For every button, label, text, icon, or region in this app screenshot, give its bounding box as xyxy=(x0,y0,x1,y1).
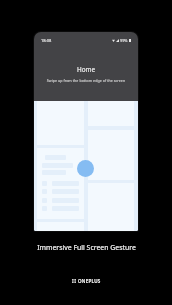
staticText: 18:08 xyxy=(41,38,52,43)
staticText: 99% xyxy=(120,38,128,43)
staticText: Home xyxy=(34,65,138,74)
staticText: ONEPLUS xyxy=(78,278,101,284)
staticText: Swipe up from the bottom edge of the scr… xyxy=(34,78,138,83)
staticText: Immersive Full Screen Gesture xyxy=(37,243,136,252)
button[interactable]: Swipe up gesture indicator xyxy=(77,160,94,177)
